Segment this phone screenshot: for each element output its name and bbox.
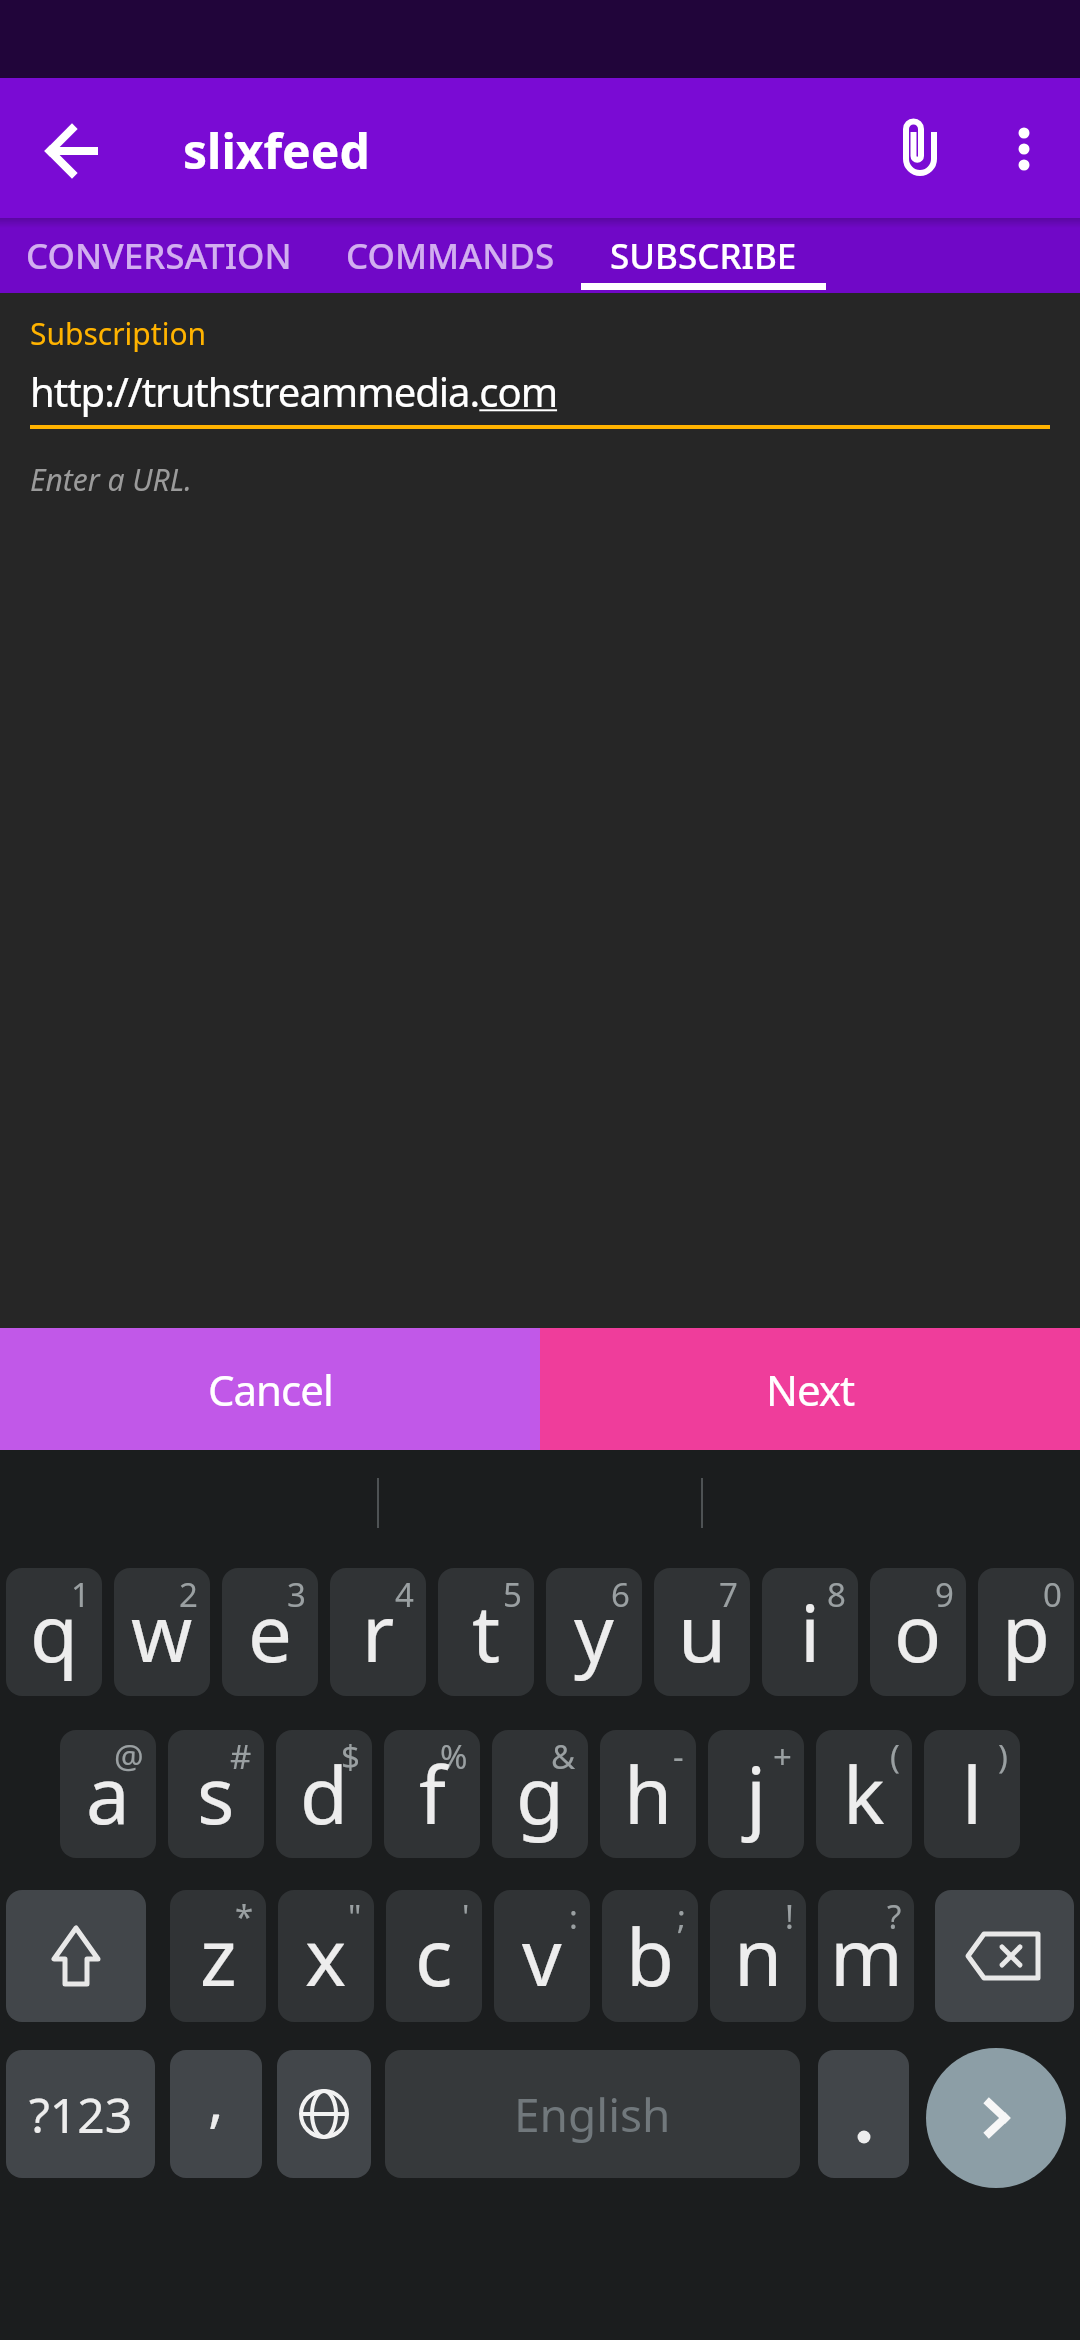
button[interactable]: , <box>170 2050 262 2178</box>
button[interactable] <box>935 1890 1074 2022</box>
staticText: 0 <box>1043 1572 1062 1617</box>
staticText: y <box>574 1579 614 1685</box>
staticText: SUBSCRIBE <box>610 232 797 280</box>
staticText: ) <box>998 1734 1008 1779</box>
staticText: slixfeed <box>183 118 370 183</box>
button[interactable]: % <box>384 1730 480 1858</box>
button[interactable]: 1 <box>6 1568 102 1696</box>
button[interactable] <box>926 2048 1066 2188</box>
staticText: b <box>626 1903 674 2009</box>
button[interactable]: COMMANDS <box>320 218 580 293</box>
staticText: f <box>419 1741 446 1847</box>
staticText: Cancel <box>208 1361 333 1418</box>
staticText: * <box>235 1894 254 1939</box>
staticText: q <box>30 1579 78 1685</box>
button[interactable] <box>818 2050 909 2178</box>
button[interactable]: # <box>168 1730 264 1858</box>
staticText: http://truthstreammedia.com <box>30 364 558 418</box>
staticText: e <box>248 1579 292 1685</box>
button[interactable]: ; <box>602 1890 698 2022</box>
button[interactable]: 5 <box>438 1568 534 1696</box>
staticText: l <box>962 1741 983 1847</box>
staticText: + <box>773 1734 792 1779</box>
staticText: 4 <box>395 1572 414 1617</box>
staticText: " <box>348 1894 362 1939</box>
button[interactable]: Cancel <box>0 1328 540 1450</box>
staticText: ?123 <box>29 2082 133 2147</box>
staticText: o <box>894 1579 942 1685</box>
staticText: 9 <box>935 1572 954 1617</box>
button[interactable]: 4 <box>330 1568 426 1696</box>
staticText: k <box>843 1741 885 1847</box>
staticText: m <box>830 1903 903 2009</box>
staticText: x <box>305 1903 347 2009</box>
button[interactable]: 8 <box>762 1568 858 1696</box>
button[interactable] <box>24 100 120 196</box>
button[interactable]: * <box>170 1890 266 2022</box>
staticText: s <box>197 1741 235 1847</box>
button[interactable]: ) <box>924 1730 1020 1858</box>
button[interactable]: ! <box>710 1890 806 2022</box>
staticText: 8 <box>827 1572 846 1617</box>
staticText: t <box>472 1579 501 1685</box>
button[interactable]: 6 <box>546 1568 642 1696</box>
staticText: h <box>624 1741 673 1847</box>
staticText: 7 <box>719 1572 738 1617</box>
button[interactable]: 9 <box>870 1568 966 1696</box>
button[interactable]: @ <box>60 1730 156 1858</box>
staticText: English <box>514 2083 671 2146</box>
button[interactable]: & <box>492 1730 588 1858</box>
button[interactable]: SUBSCRIBE <box>581 218 826 293</box>
button[interactable]: - <box>600 1730 696 1858</box>
staticText: $ <box>341 1734 360 1779</box>
button[interactable]: English <box>385 2050 800 2178</box>
button[interactable] <box>872 100 968 196</box>
staticText: Next <box>766 1361 855 1418</box>
button[interactable]: http://truthstreammedia.com <box>0 364 1080 430</box>
staticText: ? <box>887 1894 902 1939</box>
staticText: g <box>516 1741 564 1847</box>
staticText: & <box>551 1734 576 1779</box>
staticText: CONVERSATION <box>26 232 292 280</box>
staticText: 6 <box>611 1572 630 1617</box>
staticText: @ <box>114 1734 144 1779</box>
staticText: n <box>734 1903 783 2009</box>
staticText: v <box>522 1903 562 2009</box>
staticText: , <box>208 2059 224 2138</box>
button[interactable]: $ <box>276 1730 372 1858</box>
button[interactable]: ( <box>816 1730 912 1858</box>
button[interactable]: 2 <box>114 1568 210 1696</box>
button[interactable]: " <box>278 1890 374 2022</box>
button[interactable]: 3 <box>222 1568 318 1696</box>
button[interactable]: ' <box>386 1890 482 2022</box>
staticText: % <box>440 1734 468 1779</box>
staticText: r <box>362 1579 395 1685</box>
button[interactable]: CONVERSATION <box>0 218 318 293</box>
staticText: ! <box>785 1894 794 1939</box>
button[interactable]: 0 <box>978 1568 1074 1696</box>
button[interactable] <box>277 2050 371 2178</box>
button[interactable]: ?123 <box>6 2050 155 2178</box>
button[interactable]: ? <box>818 1890 914 2022</box>
staticText: 1 <box>71 1572 90 1617</box>
staticText: 5 <box>503 1572 522 1617</box>
staticText: p <box>1002 1579 1050 1685</box>
button[interactable]: 7 <box>654 1568 750 1696</box>
staticText: d <box>300 1741 348 1847</box>
staticText: Enter a URL. <box>30 459 192 500</box>
button[interactable]: + <box>708 1730 804 1858</box>
button[interactable] <box>984 100 1064 196</box>
button[interactable] <box>6 1890 146 2022</box>
staticText: # <box>230 1734 252 1779</box>
staticText: : <box>569 1894 578 1939</box>
staticText: c <box>415 1903 453 2009</box>
staticText: COMMANDS <box>346 232 555 280</box>
staticText: Subscription <box>30 313 207 354</box>
staticText: w <box>131 1579 193 1685</box>
staticText: 2 <box>179 1572 198 1617</box>
staticText: 3 <box>287 1572 306 1617</box>
button[interactable]: : <box>494 1890 590 2022</box>
button[interactable]: Next <box>540 1328 1080 1450</box>
staticText: u <box>678 1579 727 1685</box>
staticText: z <box>200 1903 237 2009</box>
